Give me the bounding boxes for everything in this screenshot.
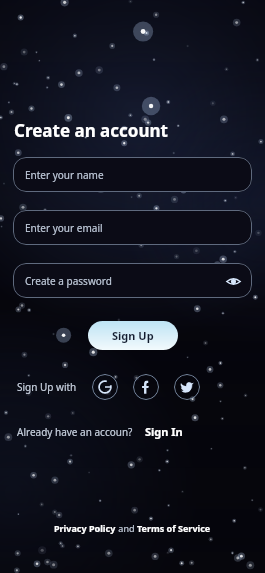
staticText: Terms of Service <box>137 522 211 534</box>
staticText: Already have an accoun? <box>17 425 133 439</box>
button[interactable]: Enter your name <box>13 157 252 192</box>
staticText: Enter your name <box>25 168 104 182</box>
button[interactable]: Sign In <box>145 424 183 439</box>
button[interactable]: Enter your email <box>13 210 252 245</box>
button[interactable]: Sign up with Google <box>92 374 118 400</box>
button[interactable]: Sign Up <box>88 321 178 350</box>
button[interactable]: Privacy Policy <box>54 522 116 534</box>
button[interactable]: Create a password <box>13 263 252 298</box>
staticText: Enter your email <box>25 221 103 235</box>
staticText: Privacy Policy <box>54 522 116 534</box>
button[interactable]: Show password <box>224 272 242 290</box>
staticText: Sign In <box>145 424 183 439</box>
button[interactable]: Sign up with Facebook <box>133 374 159 400</box>
staticText: Create a password <box>25 274 112 288</box>
staticText: and <box>116 522 137 534</box>
staticText: Sign Up with <box>17 380 77 394</box>
button[interactable]: Terms of Service <box>137 522 211 534</box>
button[interactable]: Sign up with Twitter <box>174 374 200 400</box>
staticText: Sign Up <box>112 328 154 343</box>
staticText: Create an account <box>14 119 168 142</box>
